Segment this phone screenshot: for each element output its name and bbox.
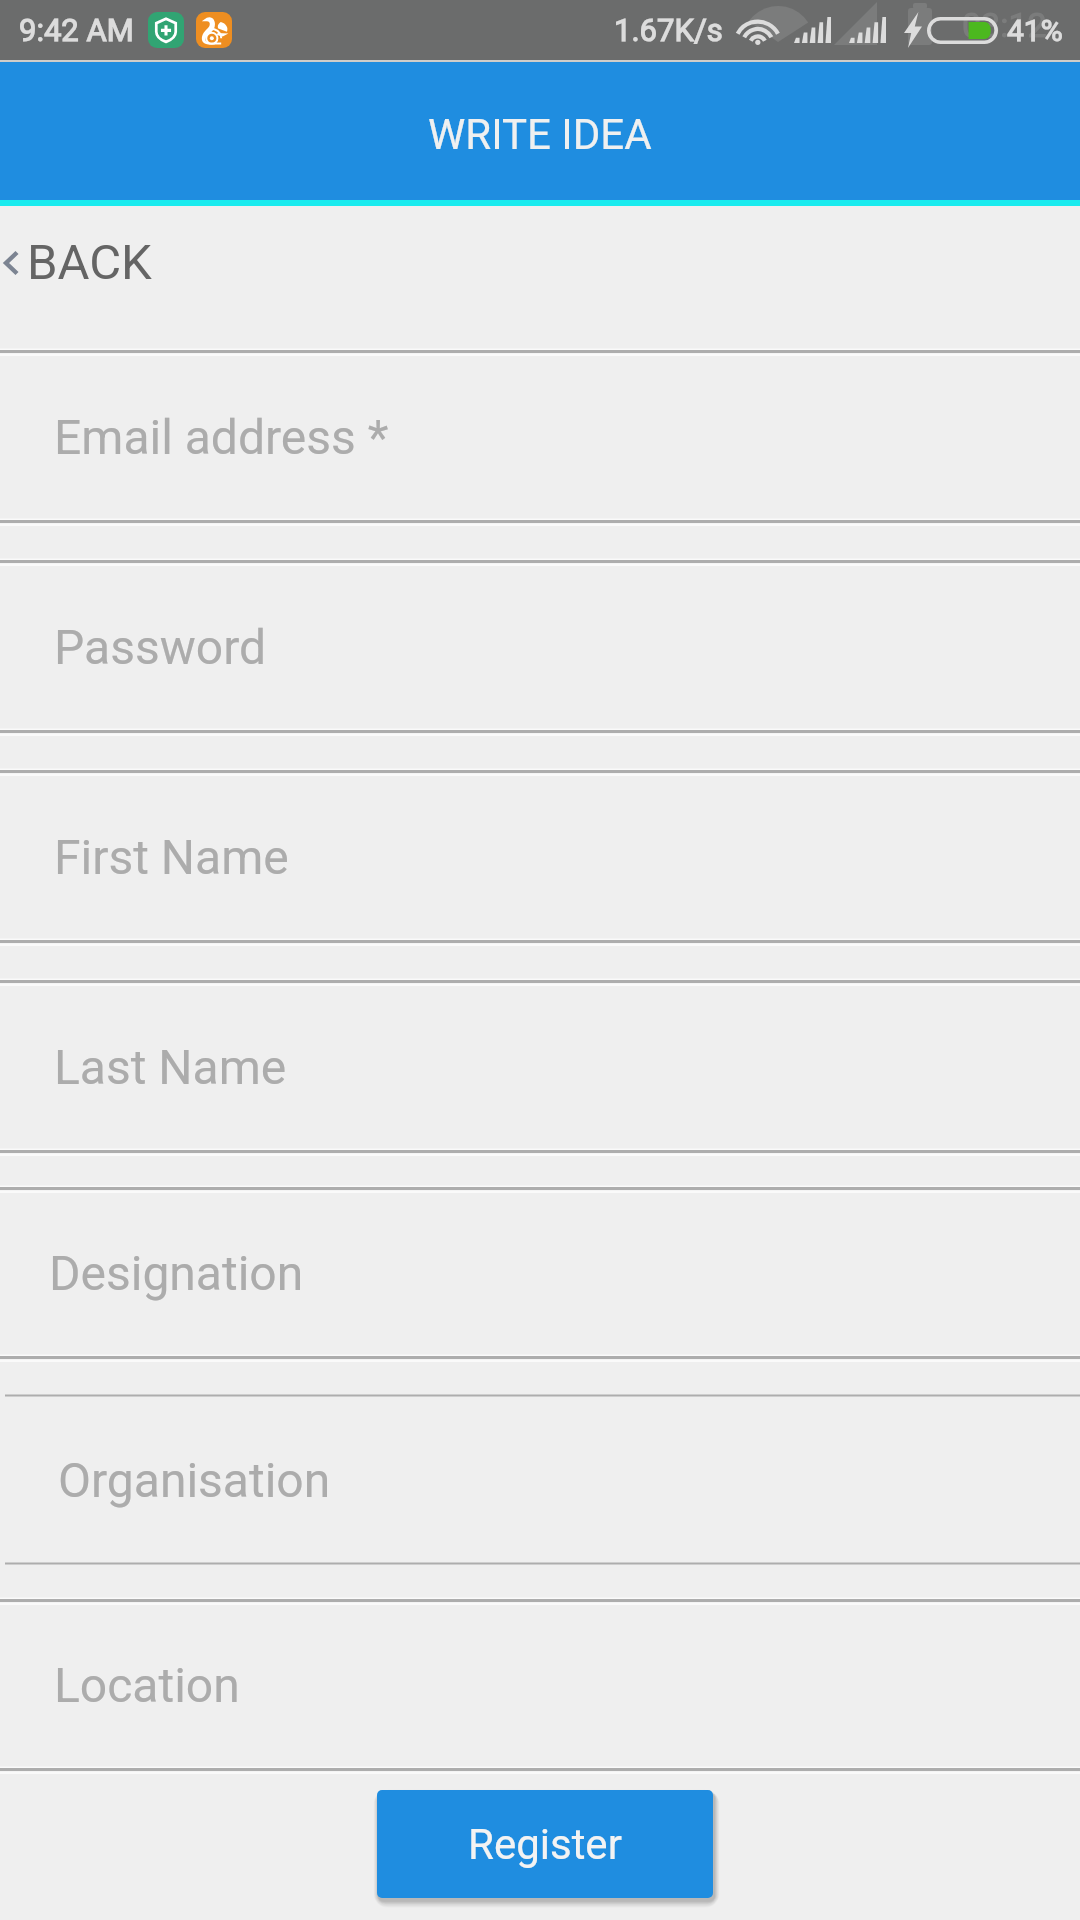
button[interactable]: Password: [0, 561, 1080, 732]
staticText: 1.67K/s: [614, 12, 723, 48]
staticText: First Name: [54, 829, 289, 885]
button[interactable]: Organisation: [0, 1395, 1080, 1564]
staticText: Register: [468, 1820, 622, 1869]
button[interactable]: Designation: [0, 1188, 1080, 1358]
staticText: 03:12: [962, 5, 1047, 45]
staticText: Email address *: [54, 409, 389, 465]
staticText: Password: [54, 619, 267, 675]
button[interactable]: Last Name: [0, 981, 1080, 1152]
staticText: Last Name: [54, 1039, 287, 1095]
staticText: Organisation: [58, 1452, 331, 1508]
button[interactable]: Email address *: [0, 351, 1080, 522]
button[interactable]: Register: [377, 1790, 713, 1898]
staticText: WRITE IDEA: [428, 110, 652, 159]
staticText: Location: [54, 1657, 240, 1713]
button[interactable]: Location: [0, 1600, 1080, 1770]
staticText: BACK: [27, 234, 152, 291]
staticText: 9:42 AM: [19, 12, 134, 48]
button[interactable]: First Name: [0, 771, 1080, 942]
staticText: 41%: [1007, 13, 1063, 48]
other: Security: [148, 12, 184, 48]
other: UC Browser: [196, 12, 232, 48]
staticText: Designation: [49, 1245, 304, 1301]
button[interactable]: BACK: [0, 206, 1080, 351]
